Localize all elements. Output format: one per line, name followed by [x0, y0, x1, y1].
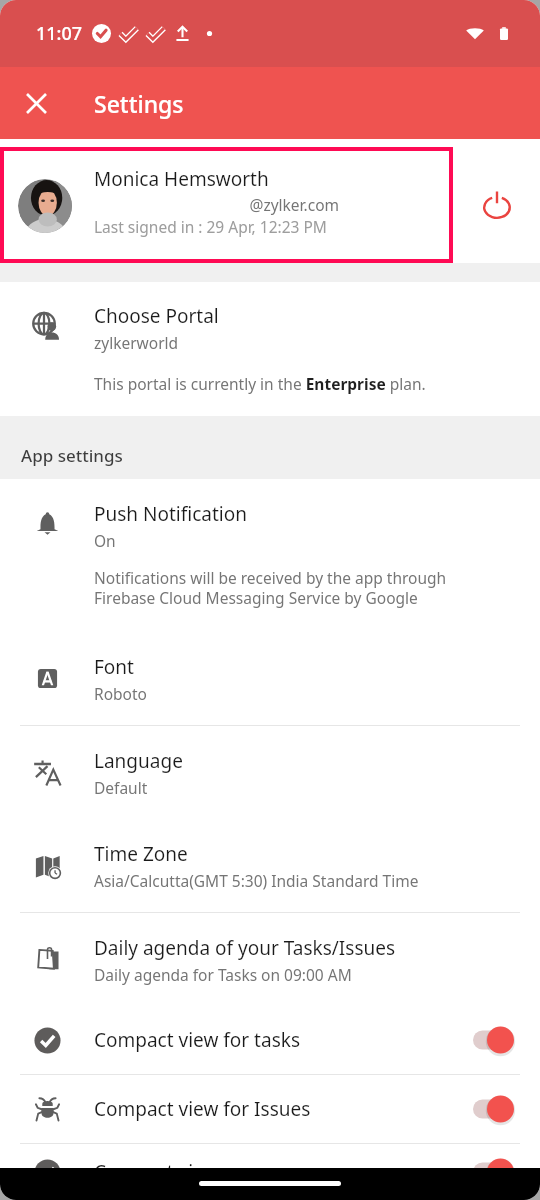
staticText: Roboto: [94, 683, 147, 704]
button[interactable]: Compact view for Issues: [0, 1075, 540, 1143]
button[interactable]: Language: [0, 726, 540, 819]
button[interactable]: Push Notification: [0, 479, 540, 632]
staticText: zylkerworld: [94, 332, 179, 353]
staticText: Compact view for Issues: [94, 1096, 473, 1122]
button[interactable]: Choose Portal: [0, 282, 540, 416]
staticText: Asia/Calcutta(GMT 5:30) India Standard T…: [94, 870, 419, 891]
button[interactable]: Compact view for tasks: [0, 1006, 540, 1074]
staticText: Language: [94, 748, 183, 774]
staticText: @zylker.com: [94, 194, 339, 215]
staticText: On: [94, 530, 116, 551]
staticText: Notifications will be received by the ap…: [94, 567, 447, 608]
button[interactable]: Monica Hemsworth: [0, 147, 453, 263]
button[interactable]: Compact view: [0, 1144, 540, 1200]
staticText: Font: [94, 654, 134, 680]
staticText: Time Zone: [94, 841, 188, 867]
button[interactable]: Daily agenda of your Tasks/Issues: [0, 913, 540, 1006]
staticText: Settings: [94, 88, 184, 119]
staticText: Last signed in : 29 Apr, 12:23 PM: [94, 216, 327, 237]
staticText: Choose Portal: [94, 303, 219, 329]
staticText: Push Notification: [94, 501, 247, 527]
staticText: Daily agenda of your Tasks/Issues: [94, 935, 396, 961]
staticText: Compact view for tasks: [94, 1027, 473, 1053]
staticText: App settings: [21, 444, 123, 467]
button[interactable]: Sign out: [453, 147, 540, 263]
staticText: Daily agenda for Tasks on 09:00 AM: [94, 964, 352, 985]
staticText: Default: [94, 777, 148, 798]
staticText: This portal is currently in the Enterpri…: [94, 373, 426, 394]
staticText: Compact view: [94, 1159, 473, 1185]
staticText: 11:07: [36, 21, 83, 46]
button[interactable]: Close: [14, 81, 58, 125]
button[interactable]: Font: [0, 632, 540, 725]
staticText: Monica Hemsworth: [94, 166, 269, 192]
button[interactable]: Time Zone: [0, 819, 540, 912]
